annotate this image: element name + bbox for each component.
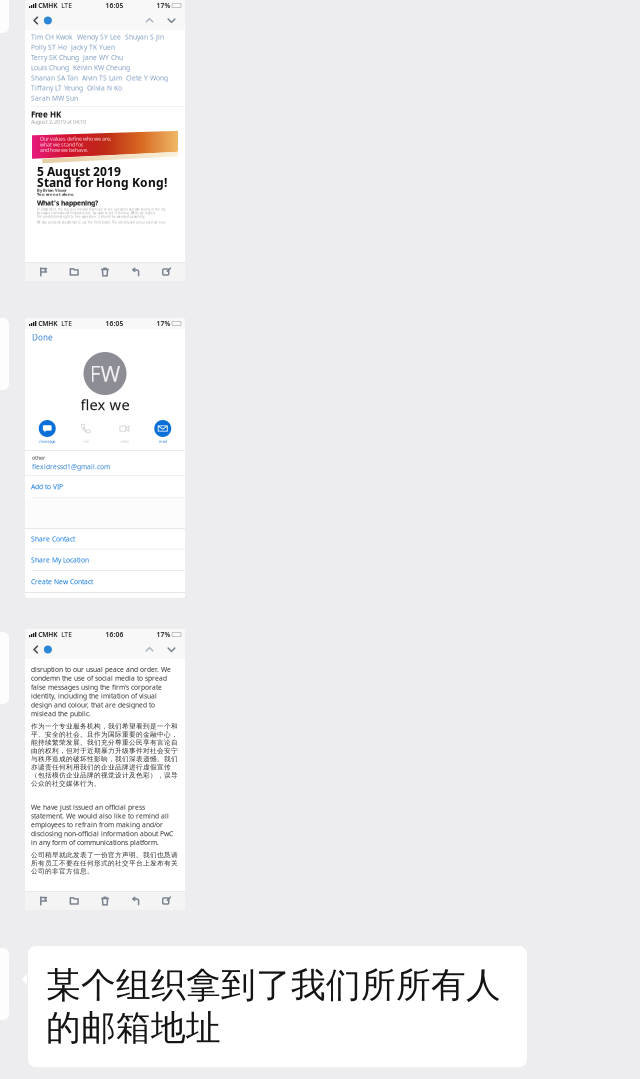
staticText: As a major international financial centr… [37, 211, 155, 215]
button[interactable]: message [28, 420, 66, 443]
staticText: Sarah MW Sun [31, 94, 78, 103]
button[interactable]: Previous message [141, 641, 158, 657]
staticText: CMHK [36, 1, 57, 10]
button[interactable]: square.and.pencil [151, 892, 182, 910]
button[interactable]: call [66, 420, 105, 443]
staticText: call [83, 439, 89, 444]
button[interactable]: Share My Location [25, 549, 185, 570]
staticText: Shanan SA Tan [31, 73, 78, 82]
staticText: We have just issued an official press st… [31, 803, 173, 847]
staticText: Wendy SY Lee [77, 33, 121, 41]
staticText: LTE [57, 630, 72, 639]
staticText: Done [32, 332, 53, 343]
button[interactable]: flag [28, 263, 59, 281]
button[interactable]: trash [90, 263, 120, 281]
staticText: Louis Chung [31, 63, 69, 72]
button[interactable]: mail [143, 420, 182, 443]
staticText: Free HK [31, 109, 61, 120]
staticText: and how we behave. [40, 146, 88, 154]
staticText: What's happening? [37, 198, 98, 207]
staticText: CMHK [36, 319, 57, 328]
button[interactable]: square.and.pencil [151, 263, 182, 281]
staticText: Jacky TK Yuen [71, 43, 115, 52]
staticText: 作为一个专业服务机构，我们希望看到是一个和平、安全的社会。且作为国际重要的金融中… [31, 722, 178, 788]
staticText: 16:06 [105, 630, 123, 639]
staticText: 16:05 [105, 319, 123, 328]
staticText: 17% [156, 319, 170, 328]
staticText: message [39, 439, 55, 444]
staticText: what we stand for, [40, 141, 83, 148]
staticText: We also condemn any attempt to use the f… [37, 221, 166, 224]
staticText: Tiffany LT Yeung [31, 84, 83, 92]
staticText: Tim CH Kwok [31, 33, 73, 41]
button[interactable]: folder [59, 892, 90, 910]
button[interactable]: folder [59, 263, 90, 281]
staticText: mail [159, 439, 167, 444]
staticText: flex we [80, 395, 129, 414]
staticText: Create New Contact [31, 577, 93, 586]
staticText: You are not alone. [37, 192, 74, 197]
staticText: video [120, 439, 129, 444]
staticText: Share Contact [31, 534, 75, 543]
button[interactable]: arrow.turn.up.left [120, 263, 151, 281]
button[interactable]: Next message [163, 641, 180, 657]
staticText: 16:05 [105, 1, 123, 10]
button[interactable]: flag [28, 892, 59, 910]
button[interactable]: Create New Contact [25, 571, 185, 592]
staticText: Olivia N Ko [87, 84, 122, 92]
button[interactable]: Add to VIP [25, 476, 185, 498]
staticText: Clete Y Wong [126, 73, 168, 82]
staticText: other [32, 454, 45, 461]
button[interactable]: Back [30, 641, 52, 657]
staticText: Stand for Hong Kong! [37, 174, 167, 190]
staticText: 5 August 2019 [37, 163, 121, 179]
staticText: 17% [156, 1, 170, 10]
button[interactable]: Share Contact [25, 529, 185, 549]
button[interactable]: Previous message [141, 12, 158, 28]
staticText: Kelvin KW Cheung [73, 63, 130, 72]
staticText: the constitutional right to free express… [37, 215, 145, 218]
staticText: FW [89, 359, 120, 388]
staticText: 某个组织拿到了我们所所有人的邮箱地址 [46, 964, 501, 1049]
staticText: In a statement, the Big Four firm said t… [37, 208, 166, 211]
button[interactable]: Back [30, 12, 52, 28]
staticText: Polly ST Ho [31, 43, 67, 52]
staticText: Alvin TS Lam [82, 73, 122, 82]
staticText: Share My Location [31, 556, 89, 564]
button[interactable]: Next message [163, 12, 180, 28]
staticText: 17% [156, 630, 170, 639]
staticText: LTE [57, 1, 72, 10]
staticText: August 2, 2019 at 04:10 [31, 118, 86, 125]
staticText: Our values define who we are, [40, 135, 111, 142]
button[interactable]: arrow.turn.up.left [120, 892, 151, 910]
button[interactable]: Done [32, 332, 53, 343]
staticText: Jane WY Chu [83, 53, 123, 62]
staticText: flexidressd1@gmail.com [32, 462, 110, 471]
staticText: LTE [57, 319, 72, 328]
staticText: 公司稍早就此发表了一份官方声明。我们也恳请所有员工不要在任何形式的社交平台上发布… [31, 851, 178, 875]
button[interactable]: video [105, 420, 143, 443]
staticText: disruption to our usual peace and order.… [31, 665, 171, 718]
button[interactable]: trash [90, 892, 120, 910]
staticText: Terry SK Chung [31, 53, 79, 62]
staticText: Add to VIP [31, 482, 63, 491]
staticText: Shuyan S Jin [125, 33, 164, 41]
staticText: CMHK [36, 630, 57, 639]
staticText: By Brian Visser [37, 188, 67, 193]
